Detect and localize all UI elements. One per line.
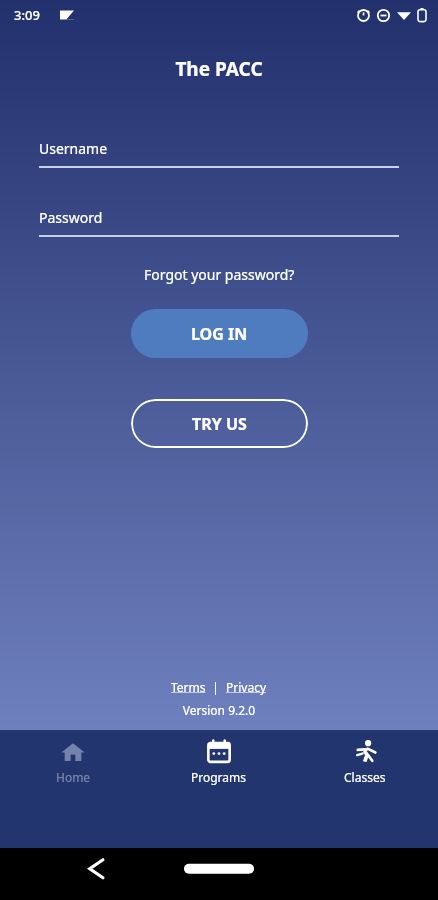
staticText: Version 9.2.0 [0,702,438,718]
button[interactable]: Privacy [226,679,267,695]
button[interactable]: Forgot your password? [0,265,438,284]
button[interactable]: Home [0,730,146,785]
staticText: LOG IN [191,323,248,345]
other: Home [60,739,86,765]
staticText: Password [39,208,103,227]
staticText: Forgot your password? [144,265,295,284]
staticText: Home [56,769,91,785]
other: Programs [206,739,232,765]
button[interactable]: Classes [292,730,438,785]
staticText: Classes [344,769,386,785]
staticText: The PACC [0,56,438,82]
button[interactable]: Terms [171,679,206,695]
button[interactable]: Username [39,139,399,168]
staticText: Username [39,139,108,158]
other: Classes [352,739,378,765]
staticText: Terms [171,679,206,695]
button[interactable]: LOG IN [131,309,308,358]
button[interactable]: TRY US [131,399,308,448]
staticText: Privacy [226,679,267,695]
staticText: | [206,679,226,695]
staticText: Programs [191,769,247,785]
button[interactable]: Programs [146,730,292,785]
button[interactable]: Password [39,208,399,237]
staticText: 3:09 [14,6,40,24]
staticText: TRY US [192,413,247,435]
